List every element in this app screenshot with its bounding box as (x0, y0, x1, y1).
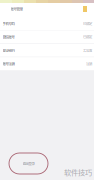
staticText: 登录密码 (2, 48, 14, 53)
staticText: 账号管理 (10, 6, 22, 11)
staticText: 手机号码 (2, 21, 14, 26)
button[interactable]: 退出登录 (9, 153, 48, 174)
staticText: 退出登录 (22, 161, 34, 166)
staticText: 已绑定 (83, 21, 92, 26)
staticText: 注销 (86, 61, 92, 66)
staticText: 微信账号 (2, 34, 14, 39)
button[interactable]: 登录密码 (0, 44, 94, 57)
button[interactable]: 账号注销 (0, 57, 94, 70)
staticText: 去设置 (83, 48, 92, 53)
staticText: 软件技巧 (64, 167, 92, 177)
staticText: 账号注销 (2, 61, 14, 66)
staticText: 已绑定 (83, 34, 92, 39)
button[interactable]: 微信账号 (0, 30, 94, 43)
button[interactable]: 手机号码 (0, 17, 94, 30)
